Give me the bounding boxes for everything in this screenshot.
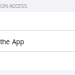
- staticText: the App: [0, 37, 24, 46]
- staticText: ON ACCESS: [0, 2, 27, 10]
- button[interactable]: the App: [0, 31, 75, 51]
